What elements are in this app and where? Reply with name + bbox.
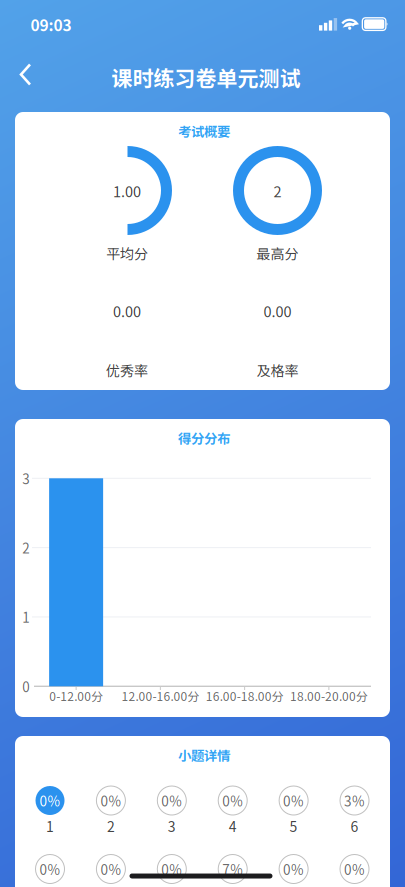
staticText: 小题详情: [178, 745, 230, 765]
staticText: 及格率: [256, 360, 298, 380]
staticText: 4: [229, 816, 237, 836]
button[interactable]: 0%: [143, 854, 201, 887]
staticText: 得分分布: [178, 428, 230, 448]
button[interactable]: 0%: [143, 786, 201, 837]
button[interactable]: Back: [4, 53, 48, 97]
staticText: 6: [350, 816, 358, 836]
staticText: 0%: [161, 859, 182, 879]
staticText: 18.00-20.00分: [290, 687, 368, 704]
button[interactable]: 0%: [21, 854, 79, 887]
staticText: 0%: [39, 859, 60, 879]
button[interactable]: 7%: [204, 854, 262, 887]
staticText: 0%: [283, 791, 304, 810]
staticText: 0%: [100, 791, 121, 810]
staticText: 0%: [161, 791, 182, 810]
button[interactable]: 3%: [325, 786, 383, 837]
staticText: 课时练习卷单元测试: [111, 62, 300, 92]
staticText: 2: [107, 816, 115, 836]
staticText: 12.00-16.00分: [121, 687, 199, 704]
staticText: 7%: [222, 859, 243, 879]
staticText: 0-12.00分: [49, 687, 103, 704]
staticText: 16.00-18.00分: [206, 687, 284, 704]
staticText: 0.00: [263, 300, 291, 321]
staticText: 优秀率: [106, 360, 148, 380]
button[interactable]: 0%: [82, 786, 140, 837]
staticText: 0.00: [113, 300, 141, 321]
button[interactable]: 0%: [265, 786, 323, 837]
button[interactable]: 0%: [265, 854, 323, 887]
staticText: 3: [168, 816, 176, 836]
staticText: 最高分: [256, 243, 298, 263]
button[interactable]: 0%: [204, 786, 262, 837]
staticText: 0%: [222, 791, 243, 810]
staticText: 1: [46, 816, 54, 836]
button[interactable]: 0%: [21, 786, 79, 837]
staticText: 09:03: [30, 13, 71, 36]
staticText: 1: [22, 607, 29, 627]
staticText: 平均分: [106, 243, 148, 263]
staticText: 1.00: [113, 180, 141, 201]
button[interactable]: 0%: [82, 854, 140, 887]
staticText: 0%: [344, 859, 365, 879]
staticText: 5: [290, 816, 298, 836]
staticText: 2: [22, 538, 29, 557]
staticText: 2: [273, 180, 281, 201]
staticText: 3%: [344, 791, 365, 810]
staticText: 0: [22, 677, 29, 696]
staticText: 0%: [100, 859, 121, 879]
staticText: 0%: [39, 791, 60, 810]
button[interactable]: 0%: [325, 854, 383, 887]
staticText: 0%: [283, 859, 304, 879]
staticText: 3: [22, 469, 29, 488]
staticText: 考试概要: [178, 121, 230, 141]
